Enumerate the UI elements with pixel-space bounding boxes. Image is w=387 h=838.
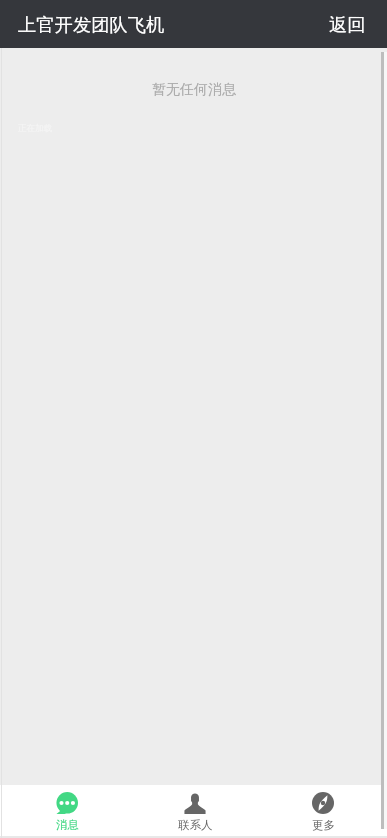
button[interactable]: 更多	[259, 785, 387, 838]
staticText: 消息	[56, 818, 79, 832]
other: 联系人	[184, 792, 206, 814]
other: 更多	[312, 792, 334, 814]
button[interactable]: 返回	[307, 0, 387, 48]
staticText: 暂无任何消息	[152, 81, 236, 99]
button[interactable]: 联系人	[131, 785, 259, 838]
staticText: 上官开发团队飞机	[18, 13, 165, 36]
button[interactable]: 消息	[3, 785, 131, 838]
staticText: 返回	[329, 13, 366, 36]
staticText: 更多	[312, 818, 335, 832]
staticText: 联系人	[178, 818, 213, 832]
other: 消息	[56, 792, 78, 814]
